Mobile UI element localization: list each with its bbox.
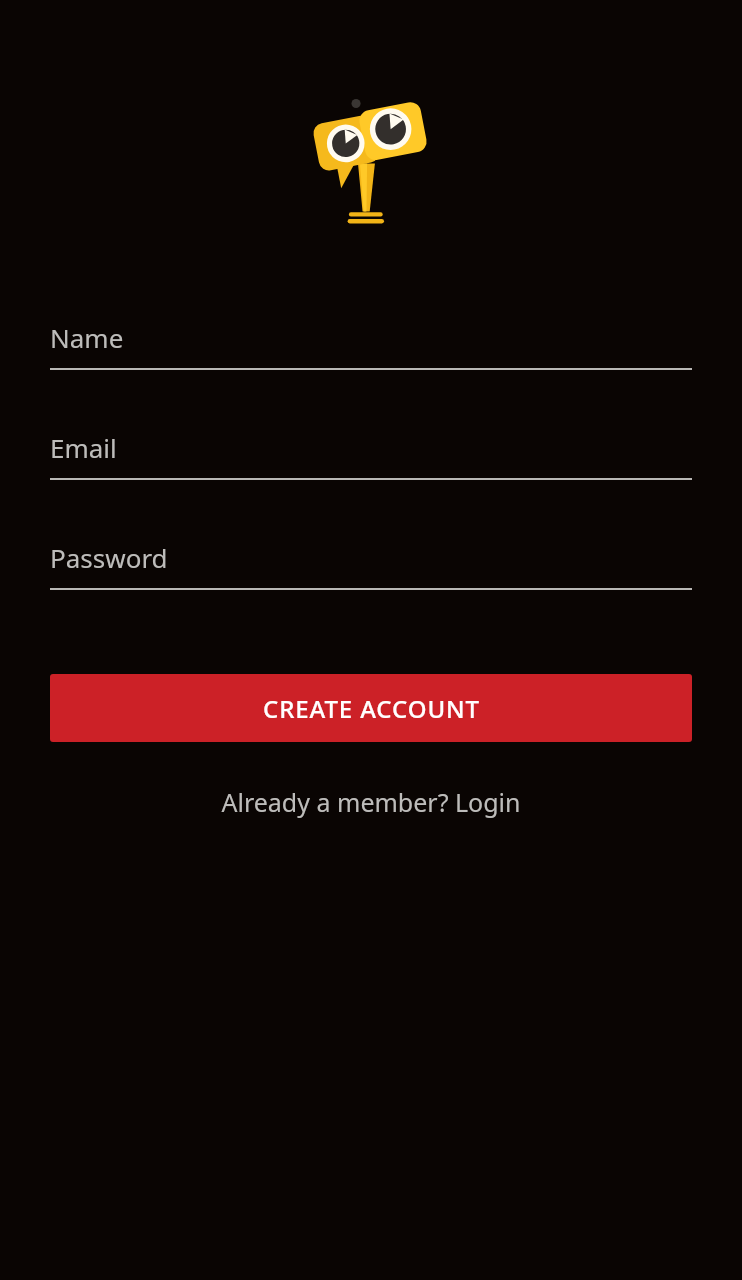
button[interactable]: Password: [50, 535, 692, 590]
button[interactable]: Email: [50, 425, 692, 480]
staticText: Already a member? Login: [221, 785, 521, 819]
staticText: CREATE ACCOUNT: [263, 692, 480, 725]
button[interactable]: Already a member? Login: [0, 776, 742, 828]
button[interactable]: Name: [50, 315, 692, 370]
staticText: Name: [50, 320, 124, 355]
button[interactable]: CREATE ACCOUNT: [50, 674, 692, 742]
staticText: Email: [50, 430, 117, 465]
staticText: Password: [50, 540, 168, 575]
